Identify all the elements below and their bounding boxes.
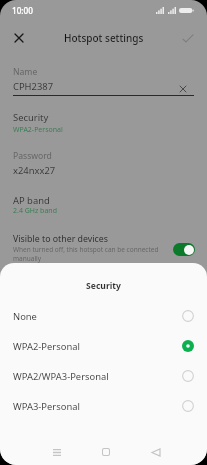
button[interactable]: WPA3-Personal	[0, 391, 207, 421]
button[interactable]: Close	[9, 28, 29, 48]
staticText: WPA2/WPA3-Personal	[13, 370, 109, 383]
staticText: Security	[13, 111, 49, 124]
staticText: AP band	[13, 194, 50, 207]
button[interactable]: Back	[146, 442, 166, 462]
staticText: WPA2-Personal	[13, 340, 80, 353]
button[interactable]: Visible to other devices toggle	[173, 243, 195, 256]
staticText: Visible to other devices	[13, 233, 108, 245]
button[interactable]: Home	[96, 442, 116, 462]
staticText: CPH2387	[13, 80, 54, 93]
staticText: x24nxx27	[13, 164, 56, 177]
button[interactable]: Recent apps	[47, 442, 67, 462]
staticText: Security	[0, 280, 207, 292]
staticText: When turned off, this hotspot can be con…	[13, 245, 168, 263]
staticText: Password	[13, 150, 52, 162]
button[interactable]: WPA2/WPA3-Personal	[0, 361, 207, 391]
button[interactable]: Done	[178, 28, 198, 48]
button[interactable]: Clear	[176, 82, 190, 96]
staticText: WPA3-Personal	[13, 400, 80, 413]
button[interactable]: None	[0, 301, 207, 331]
button[interactable]: WPA2-Personal	[0, 331, 207, 361]
staticText: 10:00	[12, 5, 33, 16]
staticText: Name	[13, 66, 38, 78]
staticText: Hotspot settings	[64, 31, 144, 45]
staticText: 2.4 GHz band	[13, 206, 57, 216]
staticText: WPA2-Personal	[13, 125, 63, 135]
staticText: None	[13, 310, 37, 323]
